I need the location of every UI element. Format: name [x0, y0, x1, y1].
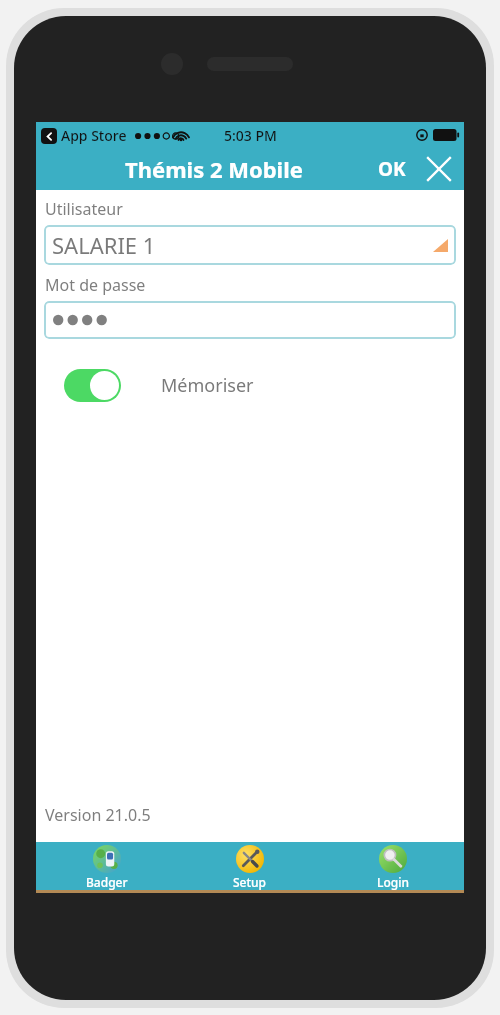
- staticText: SALARIE 1: [52, 230, 156, 260]
- staticText: Setup: [233, 874, 267, 890]
- staticText: App Store: [61, 126, 127, 145]
- staticText: Mémoriser: [161, 373, 254, 398]
- button[interactable]: [44, 301, 456, 339]
- staticText: Login: [377, 874, 409, 890]
- button[interactable]: Close: [424, 154, 454, 184]
- staticText: Utilisateur: [45, 198, 123, 220]
- staticText: Mot de passe: [45, 274, 146, 296]
- staticText: Badger: [86, 874, 128, 890]
- button[interactable]: Setup: [178, 842, 321, 890]
- staticText: 5:03 PM: [224, 126, 277, 145]
- button[interactable]: Mémoriser toggle: [64, 369, 121, 402]
- button[interactable]: SALARIE 1: [44, 225, 456, 265]
- staticText: OK: [378, 156, 406, 182]
- staticText: Version 21.0.5: [45, 804, 151, 826]
- button[interactable]: OK: [374, 152, 410, 186]
- staticText: Thémis 2 Mobile: [125, 154, 303, 184]
- button[interactable]: Login: [321, 842, 464, 890]
- button[interactable]: Badger: [36, 842, 178, 890]
